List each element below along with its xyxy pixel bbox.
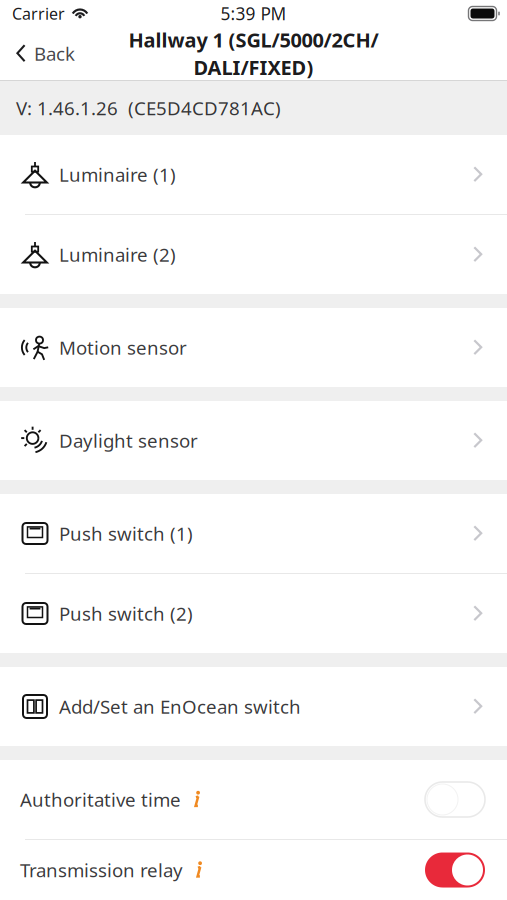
staticText: DALI/FIXED): [193, 54, 313, 81]
staticText: Push switch (2): [59, 601, 193, 626]
button[interactable]: Luminaire (1): [0, 135, 507, 214]
staticText: Hallway 1 (SGL/5000/2CH/: [128, 26, 378, 53]
staticText: Luminaire (1): [59, 162, 176, 187]
button[interactable]: Transmission relay: [425, 852, 485, 887]
staticText: V: 1.46.1.26 (CE5D4CD781AC): [16, 96, 281, 120]
staticText: Authoritative time: [20, 787, 181, 812]
button[interactable]: Motion sensor: [0, 308, 507, 387]
staticText: Carrier: [12, 3, 65, 24]
staticText: Transmission relay: [20, 858, 183, 882]
button[interactable]: Add/Set an EnOcean switch: [0, 667, 507, 746]
staticText: 5:39 PM: [220, 2, 286, 25]
button[interactable]: Luminaire (2): [0, 215, 507, 294]
staticText: Back: [34, 41, 75, 66]
staticText: Luminaire (2): [59, 242, 176, 267]
staticText: Add/Set an EnOcean switch: [59, 694, 301, 719]
button[interactable]: Push switch (2): [0, 574, 507, 653]
button[interactable]: Push switch (1): [0, 494, 507, 573]
button[interactable]: Authoritative time: [425, 782, 485, 817]
staticText: Motion sensor: [59, 335, 187, 360]
staticText: Daylight sensor: [59, 428, 198, 453]
button[interactable]: Daylight sensor: [0, 401, 507, 480]
button[interactable]: Back: [0, 27, 87, 80]
staticText: Push switch (1): [59, 521, 193, 546]
